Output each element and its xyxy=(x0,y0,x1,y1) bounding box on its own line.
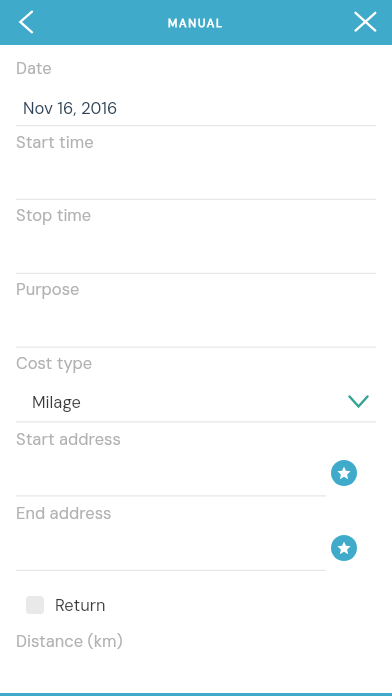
button[interactable]: Select cost type xyxy=(340,384,376,418)
button[interactable]: Favourite address xyxy=(331,535,357,561)
staticText: Start address xyxy=(16,429,121,450)
staticText: Stop time xyxy=(16,205,92,226)
button[interactable]: Favourite address xyxy=(331,460,357,486)
button[interactable]: Back xyxy=(0,0,45,45)
staticText: Nov 16, 2016 xyxy=(23,98,118,119)
staticText: Purpose xyxy=(16,279,80,300)
staticText: Distance (km) xyxy=(16,631,123,652)
staticText: End address xyxy=(16,503,112,524)
staticText: Start time xyxy=(16,132,94,153)
button[interactable]: Close xyxy=(347,0,392,45)
staticText: Cost type xyxy=(16,353,93,374)
button[interactable]: Return xyxy=(16,592,106,618)
staticText: Return xyxy=(55,595,106,616)
staticText: Milage xyxy=(32,392,81,413)
staticText: Date xyxy=(16,58,52,79)
staticText: MANUAL xyxy=(168,16,224,31)
